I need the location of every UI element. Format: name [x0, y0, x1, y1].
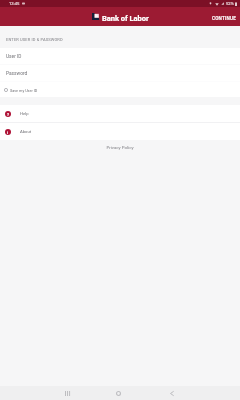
staticText: Save my User ID: [10, 88, 38, 92]
button[interactable]: Save my User ID: [0, 82, 240, 97]
staticText: CONTINUE: [212, 16, 237, 21]
staticText: 13:45: [9, 1, 20, 6]
staticText: User ID: [6, 54, 22, 60]
button[interactable]: Back: [158, 386, 185, 400]
button[interactable]: Recent apps: [54, 386, 81, 400]
staticText: 52%: [226, 1, 234, 6]
staticText: ?: [7, 112, 9, 117]
button[interactable]: CONTINUE: [206, 10, 240, 23]
button[interactable]: ?: [0, 105, 240, 122]
staticText: i: [7, 130, 9, 135]
staticText: About: [20, 129, 32, 134]
staticText: ENTER USER ID & PASSWORD: [6, 37, 63, 42]
staticText: Privacy Policy: [0, 145, 240, 150]
button[interactable]: User ID: [0, 48, 240, 64]
button[interactable]: Home: [105, 386, 132, 400]
staticText: Help: [20, 111, 29, 116]
staticText: Password: [6, 71, 28, 77]
staticText: Bank of Labor: [102, 14, 149, 23]
button[interactable]: i: [0, 123, 240, 140]
button[interactable]: Password: [0, 65, 240, 81]
